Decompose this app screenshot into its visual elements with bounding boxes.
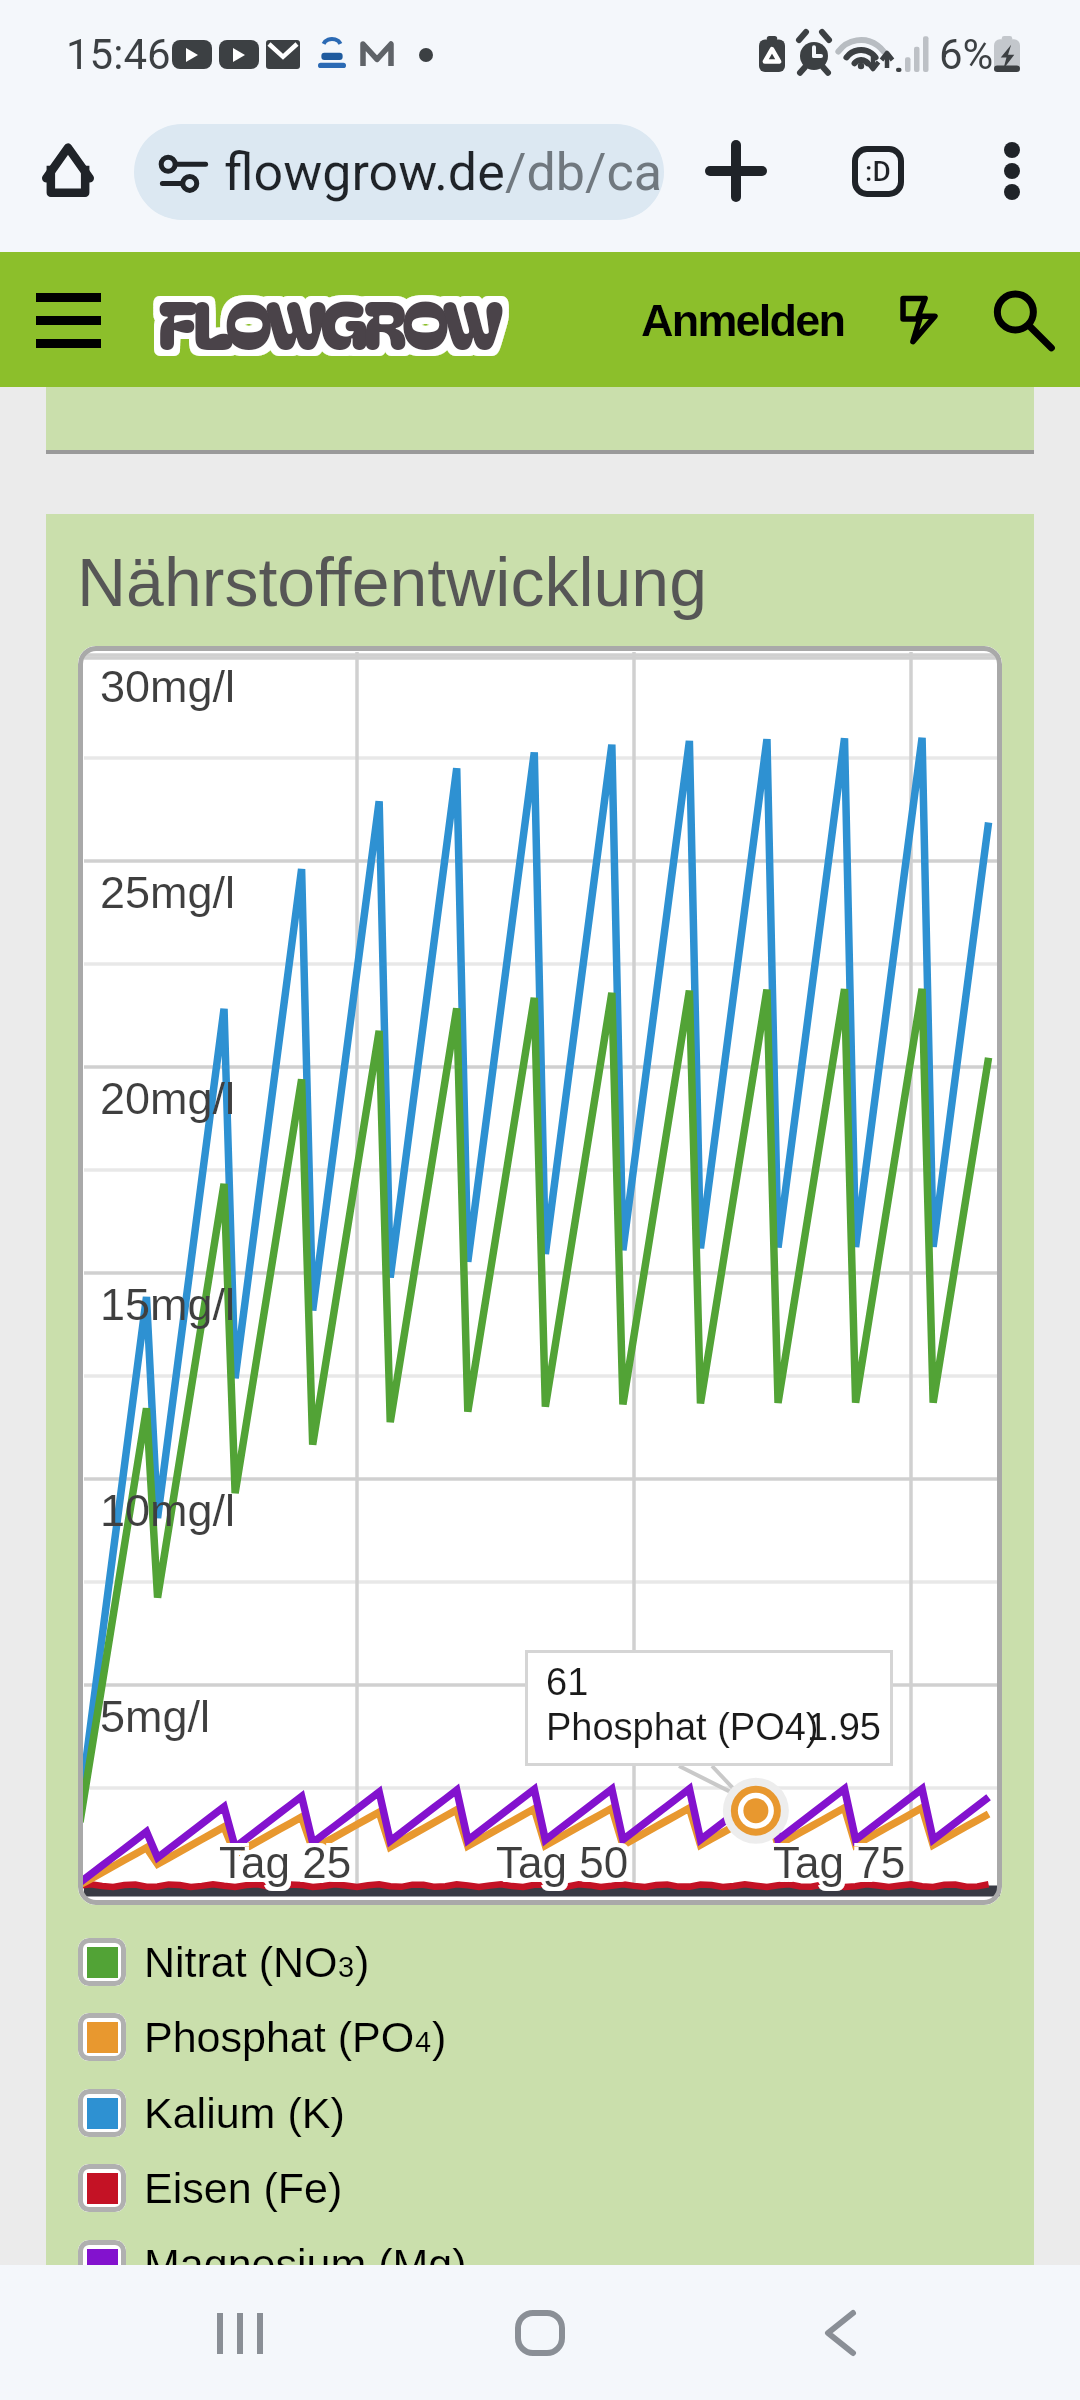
staticText: FLOWGROW [155,275,497,372]
staticText: 15:46 [66,30,171,79]
button[interactable]: Search [974,274,1066,366]
staticText: Tag 50 [492,1842,625,1891]
staticText: Eisen (Fe) [144,2164,343,2212]
button[interactable]: New tab [694,129,778,213]
staticText: 1.95 [807,1706,881,1748]
button[interactable]: Menu [10,265,126,375]
staticText: Phosphat (PO [144,2013,415,2061]
staticText: 6% [939,30,994,79]
staticText: 5mg/l [100,1691,211,1741]
staticText: Nitrat (NO [144,1938,338,1986]
staticText: 10mg/l [100,1485,236,1535]
button[interactable]: Home [26,129,110,213]
staticText: 30mg/l [100,661,236,711]
button[interactable]: Phosphat (PO [66,2000,826,2074]
staticText: Tag 50 [500,1834,633,1883]
staticText: FLOWGROW [164,278,506,375]
button[interactable]: More options [970,129,1054,213]
button[interactable]: Quick actions [874,275,964,365]
staticText: Tag 25 [219,1838,352,1887]
staticText: FLOWGROW [161,278,503,375]
staticText: FLOWGROW [152,266,494,363]
staticText: FLOWGROW [152,278,494,375]
staticText: 20mg/l [100,1073,236,1123]
staticText: Anmelden [641,295,845,345]
staticText: FLOWGROW [155,278,497,375]
staticText: Tag 50 [496,1834,629,1883]
button[interactable]: Home [480,2273,600,2393]
staticText: Tag 25 [223,1842,356,1891]
staticText: :D [865,155,891,188]
staticText: FLOWGROW [152,275,494,372]
button[interactable]: FLOWGROW [158,265,500,375]
staticText: Tag 50 [496,1842,629,1891]
staticText: Tag 25 [215,1842,348,1891]
staticText: FLOWGROW [152,269,494,366]
staticText: Tag 50 [492,1838,625,1887]
button[interactable]: Nitrat (NO [66,1925,826,1999]
staticText: Phosphat (PO4) [546,1706,819,1748]
staticText: Tag 75 [777,1838,910,1887]
button[interactable]: flowgrow.de [134,124,664,220]
staticText: 3 [338,1951,355,1983]
staticText: FLOWGROW [155,269,497,366]
staticText: FLOWGROW [158,278,500,375]
staticText: 25mg/l [100,867,236,917]
staticText: Tag 25 [219,1842,352,1891]
staticText: Tag 50 [492,1834,625,1883]
staticText: FLOWGROW [164,275,506,372]
staticText: FLOWGROW [161,269,503,366]
staticText: Tag 50 [500,1842,633,1891]
staticText: Tag 75 [777,1842,910,1891]
button[interactable]: Switch tabs [836,129,920,213]
staticText: Magnesium (Mg) [144,2240,467,2288]
staticText: /db/ca [505,142,662,203]
staticText: 15mg/l [100,1279,236,1329]
button[interactable]: Back [780,2273,900,2393]
staticText: Tag 75 [769,1834,902,1883]
staticText: FLOWGROW [164,266,506,363]
staticText: Tag 25 [223,1834,356,1883]
button[interactable]: Kalium (K) [66,2076,826,2150]
staticText: 61 [546,1661,589,1703]
staticText: FLOWGROW [161,275,503,372]
staticText: Tag 25 [223,1838,356,1887]
staticText: Tag 25 [215,1838,348,1887]
staticText: FLOWGROW [161,266,503,363]
staticText: FLOWGROW [158,266,500,363]
staticText: Tag 50 [500,1838,633,1887]
staticText: Tag 75 [769,1842,902,1891]
staticText: Tag 25 [219,1834,352,1883]
staticText: FLOWGROW [155,272,497,369]
staticText: FLOWGROW [161,272,503,369]
staticText: FLOWGROW [164,272,506,369]
staticText: FLOWGROW [152,272,494,369]
staticText: Nährstoffentwicklung [77,544,707,620]
staticText: Tag 75 [773,1842,906,1891]
staticText: Tag 75 [777,1834,910,1883]
staticText: FLOWGROW [164,269,506,366]
staticText: FLOWGROW [158,275,500,372]
staticText: Tag 50 [496,1838,629,1887]
button[interactable]: Magnesium (Mg) [66,2227,826,2301]
staticText: ) [432,2013,447,2061]
staticText: Tag 75 [769,1838,902,1887]
staticText: Tag 75 [773,1834,906,1883]
staticText: FLOWGROW [155,266,497,363]
staticText: flowgrow.de [224,142,505,203]
staticText: Kalium (K) [144,2089,345,2137]
button[interactable]: Eisen (Fe) [66,2151,826,2225]
staticText: Tag 75 [773,1838,906,1887]
staticText: 4 [415,2026,432,2058]
staticText: ) [355,1938,370,1986]
button[interactable]: Anmelden [627,265,859,375]
staticText: FLOWGROW [158,272,500,369]
staticText: Tag 25 [215,1834,348,1883]
staticText: FLOWGROW [158,269,500,366]
button[interactable]: Recent apps [180,2273,300,2393]
